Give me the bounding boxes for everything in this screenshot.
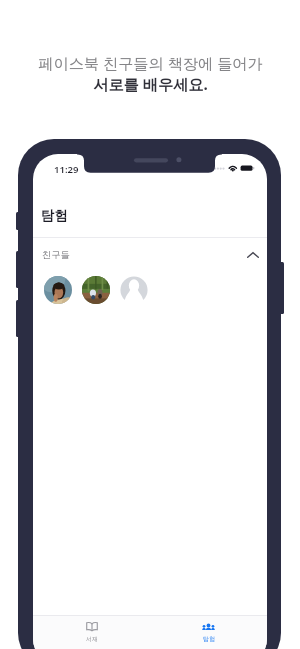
- button[interactable]: Add friend: [120, 276, 148, 304]
- staticText: 11:29: [54, 163, 79, 176]
- button[interactable]: 서재: [33, 615, 150, 649]
- staticText: 서로를 배우세요.: [93, 74, 208, 95]
- staticText: 서재: [86, 635, 98, 643]
- staticText: 탐험: [203, 635, 215, 643]
- staticText: 친구들: [42, 249, 70, 261]
- button[interactable]: Friend avatar: [44, 276, 72, 304]
- staticText: 탐험: [41, 207, 68, 224]
- other: Collapse section: [247, 252, 259, 258]
- button[interactable]: 탐험: [35, 202, 68, 228]
- button[interactable]: 친구들: [33, 242, 267, 267]
- staticText: 페이스북 친구들의 책장에 들어가: [38, 53, 263, 74]
- button[interactable]: Friend avatar: [82, 276, 110, 304]
- button[interactable]: 탐험: [150, 615, 267, 649]
